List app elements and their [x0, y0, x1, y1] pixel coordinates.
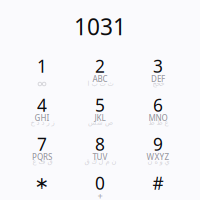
button[interactable]: 7	[13, 129, 71, 168]
staticText: ABC	[92, 74, 107, 84]
staticText: 8	[95, 132, 105, 155]
button[interactable]: 2	[71, 51, 129, 90]
staticText: 1	[37, 54, 47, 77]
button[interactable]: 3	[129, 51, 187, 90]
staticText: ن م ل ك ق	[84, 158, 116, 165]
staticText: WXYZ	[146, 152, 169, 162]
staticText: #	[152, 171, 163, 194]
staticText: MNO	[148, 113, 167, 123]
staticText: ص شس	[87, 119, 112, 126]
staticText: TUV	[92, 152, 107, 162]
button[interactable]: 1031	[0, 0, 200, 51]
staticText: 3	[153, 54, 163, 77]
button[interactable]: ∗	[13, 168, 71, 200]
staticText: DEF	[151, 74, 165, 84]
button[interactable]: #	[129, 168, 187, 200]
staticText: 1031	[74, 11, 126, 41]
staticText: 0	[95, 171, 105, 194]
staticText: 5	[95, 93, 105, 116]
staticText: ق ف غ	[32, 158, 52, 165]
staticText: 6	[153, 93, 163, 116]
staticText: 4	[37, 93, 47, 116]
button[interactable]: 0	[71, 168, 129, 200]
staticText: ع ظ ط	[148, 119, 168, 126]
staticText: ي و ه ن	[147, 158, 169, 165]
staticText: GHI	[34, 113, 49, 123]
staticText: ث ت ب ا	[87, 80, 113, 87]
staticText: ز ر ذ د خ	[30, 119, 54, 126]
staticText: خحج	[152, 80, 164, 87]
staticText: 7	[37, 132, 47, 155]
staticText: 9	[153, 132, 163, 155]
staticText: +	[97, 190, 102, 200]
button[interactable]: 1	[13, 51, 71, 90]
staticText: PQRS	[32, 152, 52, 162]
staticText: ∗	[34, 173, 49, 193]
button[interactable]: 9	[129, 129, 187, 168]
button[interactable]: 4	[13, 90, 71, 129]
button[interactable]: 6	[129, 90, 187, 129]
staticText: 2	[95, 54, 105, 77]
button[interactable]: 8	[71, 129, 129, 168]
staticText: JKL	[94, 113, 105, 123]
button[interactable]: 5	[71, 90, 129, 129]
